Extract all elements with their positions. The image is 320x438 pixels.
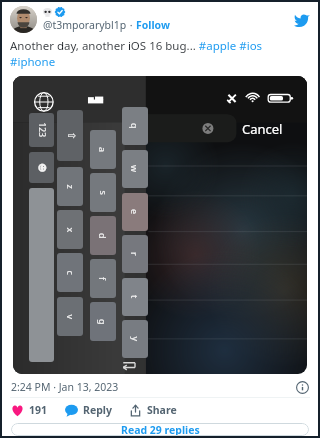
staticText: v [64, 314, 76, 319]
staticText: 2:24 PM · Jan 13, 2023 [11, 380, 119, 394]
staticText: 123 [35, 122, 47, 137]
staticText: @t3mporarybl1p [43, 18, 127, 32]
staticText: ⇧ [64, 131, 76, 140]
button[interactable]: Reply [65, 403, 112, 417]
staticText: x [64, 227, 76, 232]
staticText: e [129, 209, 141, 215]
staticText: Follow [136, 18, 170, 32]
button[interactable]: Read 29 replies [11, 423, 309, 436]
button[interactable]: Twitter [294, 12, 310, 28]
staticText: Another day, another iOS 16 bug... #appl… [10, 38, 310, 70]
staticText: ☻ [37, 163, 47, 173]
staticText: t [129, 295, 141, 299]
staticText: 191 [29, 403, 48, 417]
staticText: Share [147, 403, 177, 417]
staticText: y [129, 336, 141, 341]
staticText: q [129, 123, 141, 129]
button[interactable] [10, 6, 37, 33]
staticText: c [64, 270, 76, 275]
button[interactable]: 191 [11, 403, 48, 417]
button[interactable]: 123 [13, 76, 307, 374]
staticText: s [97, 190, 109, 195]
staticText: r [129, 252, 141, 256]
button[interactable]: Follow [136, 18, 170, 32]
staticText: d [97, 233, 109, 239]
staticText: Cancel [242, 120, 283, 138]
staticText: · [127, 18, 136, 32]
staticText: w [129, 165, 141, 173]
button[interactable]: Info [296, 381, 309, 394]
staticText: Read 29 replies [121, 423, 200, 436]
staticText: g [97, 319, 109, 325]
staticText: z [64, 184, 76, 189]
staticText: Reply [83, 403, 112, 417]
staticText: f [97, 277, 109, 281]
staticText: a [97, 147, 109, 153]
button[interactable]: Share [129, 403, 177, 417]
